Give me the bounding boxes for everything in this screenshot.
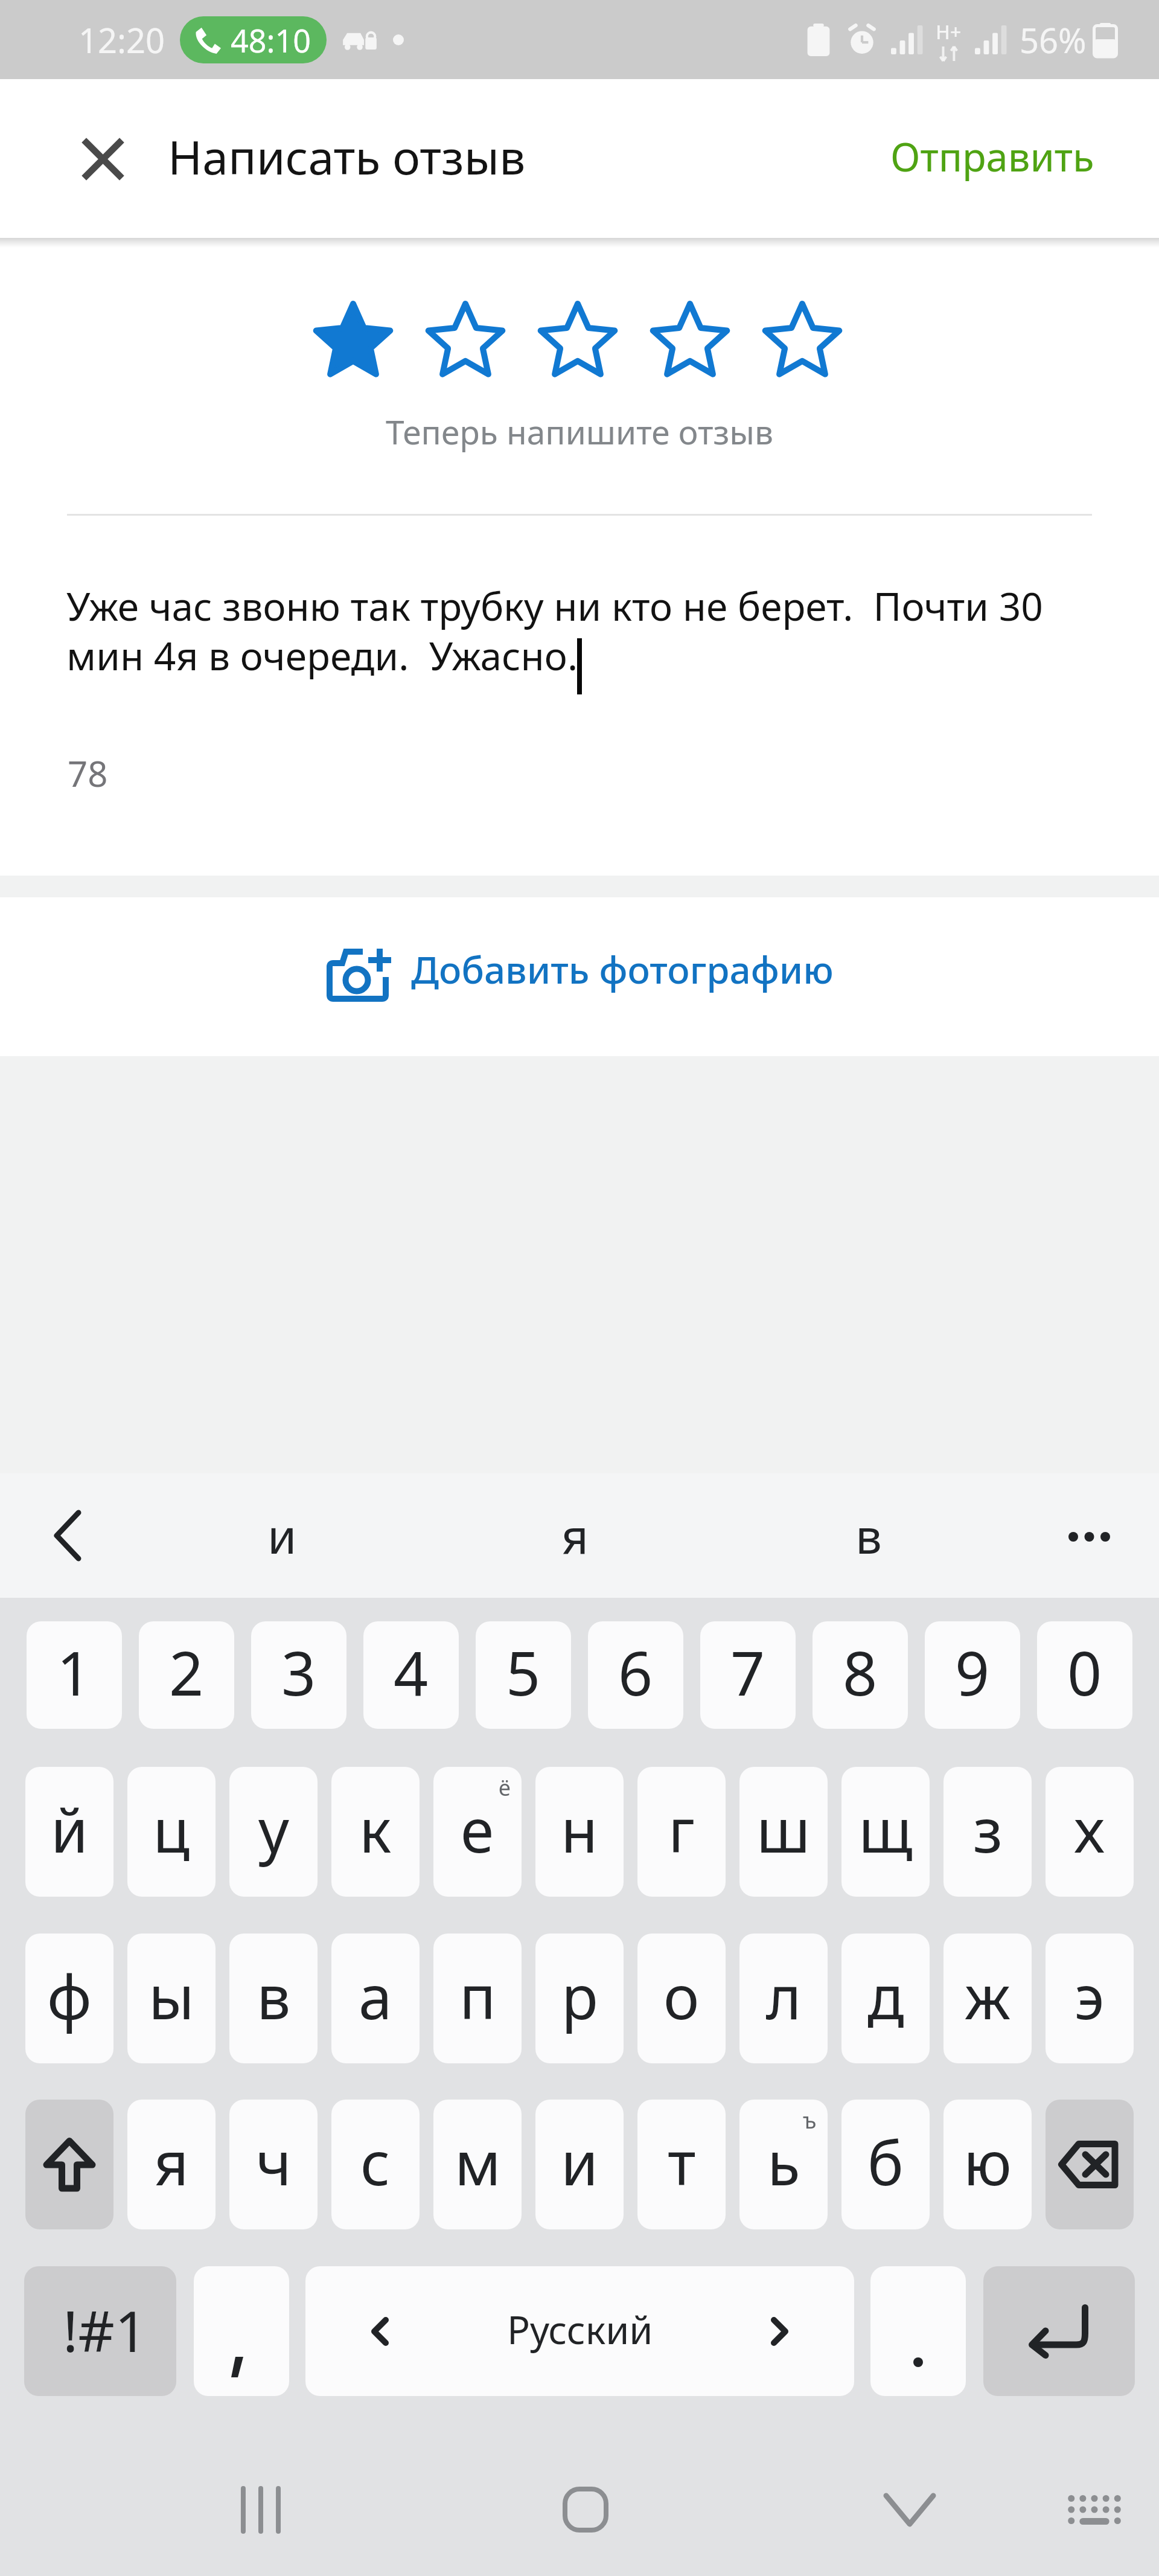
- staticText: 78: [68, 749, 108, 797]
- staticText: а: [359, 1955, 392, 2037]
- staticText: м: [455, 2121, 501, 2203]
- button[interactable]: Rate 1 star: [313, 295, 393, 383]
- button[interactable]: а: [331, 1934, 420, 2063]
- button[interactable]: с: [331, 2100, 420, 2229]
- button[interactable]: Home: [537, 2461, 634, 2558]
- staticText: 7: [730, 1631, 765, 1713]
- button[interactable]: б: [841, 2100, 930, 2229]
- button[interactable]: в: [722, 1473, 1015, 1598]
- button[interactable]: р: [535, 1934, 624, 2063]
- button[interactable]: у: [229, 1767, 318, 1897]
- button[interactable]: Отправить: [857, 106, 1128, 211]
- staticText: ч: [256, 2121, 292, 2203]
- button[interactable]: й: [25, 1767, 113, 1897]
- button[interactable]: д: [841, 1934, 930, 2063]
- staticText: и: [267, 1504, 297, 1568]
- button[interactable]: в: [229, 1934, 318, 2063]
- button[interactable]: ы: [127, 1934, 216, 2063]
- button[interactable]: щ: [841, 1767, 930, 1897]
- button[interactable]: ш: [739, 1767, 828, 1897]
- button[interactable]: 3: [251, 1621, 346, 1729]
- staticText: я: [561, 1504, 589, 1568]
- staticText: г: [668, 1788, 695, 1870]
- staticText: й: [51, 1788, 89, 1870]
- button[interactable]: п: [433, 1934, 522, 2063]
- staticText: ь: [767, 2121, 800, 2203]
- button[interactable]: 2: [139, 1621, 234, 1729]
- staticText: д: [867, 1955, 904, 2037]
- button[interactable]: Rate 5 star: [762, 295, 842, 383]
- button[interactable]: ю: [943, 2100, 1032, 2229]
- button[interactable]: 4: [363, 1621, 459, 1729]
- button[interactable]: Previous suggestions: [0, 1473, 135, 1598]
- staticText: ф: [47, 1955, 92, 2037]
- button[interactable]: Space, Русский: [305, 2266, 854, 2396]
- button[interactable]: з: [943, 1767, 1032, 1897]
- button[interactable]: я: [127, 2100, 216, 2229]
- staticText: е: [461, 1788, 494, 1870]
- staticText: 8: [843, 1631, 878, 1713]
- staticText: в: [257, 1955, 291, 2037]
- staticText: Русский: [507, 2304, 653, 2356]
- staticText: в: [855, 1504, 882, 1568]
- button[interactable]: Добавить фотографию: [0, 897, 1159, 1056]
- button[interactable]: ф: [25, 1934, 113, 2063]
- button[interactable]: Comma: [194, 2266, 289, 2396]
- button[interactable]: Rate 3 star: [538, 295, 618, 383]
- button[interactable]: 6: [588, 1621, 683, 1729]
- button[interactable]: Close: [51, 107, 154, 210]
- button[interactable]: я: [429, 1473, 722, 1598]
- staticText: к: [359, 1788, 392, 1870]
- button[interactable]: ч: [229, 2100, 318, 2229]
- button[interactable]: Change keyboard: [1046, 2461, 1143, 2558]
- staticText: ю: [963, 2121, 1012, 2203]
- staticText: о: [663, 1955, 700, 2037]
- button[interactable]: Recent apps: [212, 2461, 309, 2558]
- staticText: л: [766, 1955, 802, 2037]
- button[interactable]: Rate 2 star: [426, 295, 505, 383]
- staticText: ы: [148, 1955, 194, 2037]
- button[interactable]: 0: [1037, 1621, 1132, 1729]
- button[interactable]: т: [637, 2100, 726, 2229]
- staticText: 4: [394, 1631, 429, 1713]
- button[interactable]: 1: [27, 1621, 122, 1729]
- button[interactable]: ь: [739, 2100, 828, 2229]
- button[interactable]: ж: [943, 1934, 1032, 2063]
- button[interactable]: Shift: [25, 2100, 113, 2229]
- staticText: з: [973, 1788, 1003, 1870]
- button[interactable]: н: [535, 1767, 624, 1897]
- staticText: 2: [169, 1631, 204, 1713]
- button[interactable]: Rate 4 star: [650, 295, 730, 383]
- button[interactable]: о: [637, 1934, 726, 2063]
- button[interactable]: Backspace: [1046, 2100, 1134, 2229]
- button[interactable]: и: [135, 1473, 429, 1598]
- button[interactable]: ц: [127, 1767, 216, 1897]
- staticText: ш: [756, 1788, 811, 1870]
- button[interactable]: 7: [700, 1621, 796, 1729]
- staticText: 56%: [1020, 17, 1087, 63]
- button[interactable]: м: [433, 2100, 522, 2229]
- staticText: 12:20: [78, 17, 165, 63]
- button[interactable]: э: [1046, 1934, 1134, 2063]
- button[interactable]: л: [739, 1934, 828, 2063]
- button[interactable]: 8: [813, 1621, 908, 1729]
- staticText: ё: [499, 1773, 511, 1802]
- staticText: Теперь напишите отзыв: [0, 409, 1159, 454]
- staticText: б: [867, 2121, 904, 2203]
- button[interactable]: и: [535, 2100, 624, 2229]
- button[interactable]: Hide keyboard: [861, 2461, 958, 2558]
- button[interactable]: х: [1046, 1767, 1134, 1897]
- staticText: 0: [1067, 1631, 1102, 1713]
- staticText: 9: [955, 1631, 990, 1713]
- button[interactable]: г: [637, 1767, 726, 1897]
- button[interactable]: !#1: [24, 2266, 176, 2396]
- button[interactable]: е: [433, 1767, 522, 1897]
- button[interactable]: 5: [476, 1621, 571, 1729]
- button[interactable]: к: [331, 1767, 420, 1897]
- button[interactable]: Period: [870, 2266, 966, 2396]
- button[interactable]: More options: [1015, 1473, 1159, 1598]
- staticText: н: [561, 1788, 598, 1870]
- staticText: !#1: [63, 2292, 147, 2369]
- button[interactable]: 9: [925, 1621, 1020, 1729]
- button[interactable]: Enter: [983, 2266, 1135, 2396]
